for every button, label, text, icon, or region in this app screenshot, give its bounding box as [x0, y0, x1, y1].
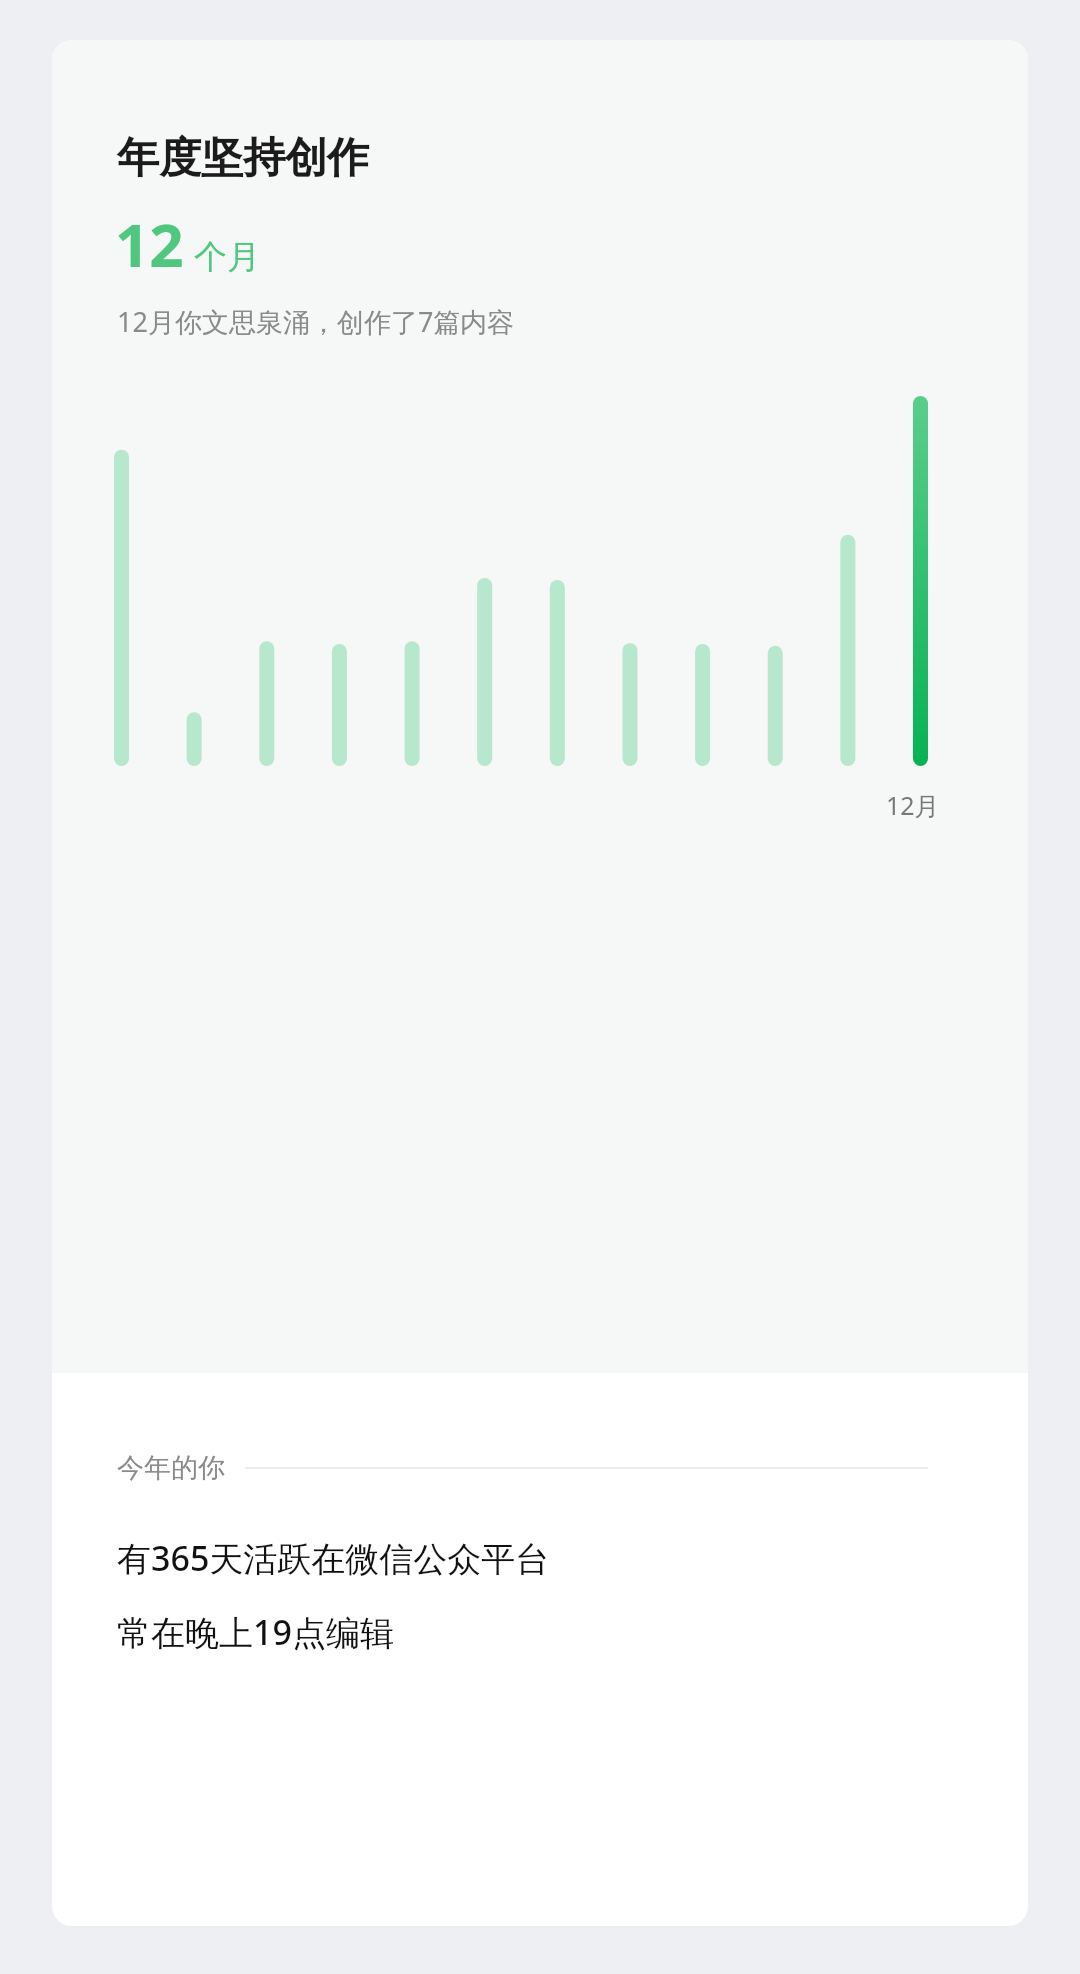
- staticText: 有365天活跃在微信公众平台: [117, 1535, 550, 1581]
- staticText: 12: [115, 203, 184, 285]
- staticText: 今年的你: [117, 1451, 225, 1485]
- button[interactable]: 年度坚持创作: [52, 40, 1028, 1926]
- staticText: 12月: [886, 788, 940, 822]
- staticText: 年度坚持创作: [117, 132, 369, 185]
- staticText: 常在晚上19点编辑: [117, 1609, 394, 1655]
- staticText: 12月你文思泉涌，创作了7篇内容: [117, 303, 515, 340]
- staticText: 个月: [194, 236, 260, 278]
